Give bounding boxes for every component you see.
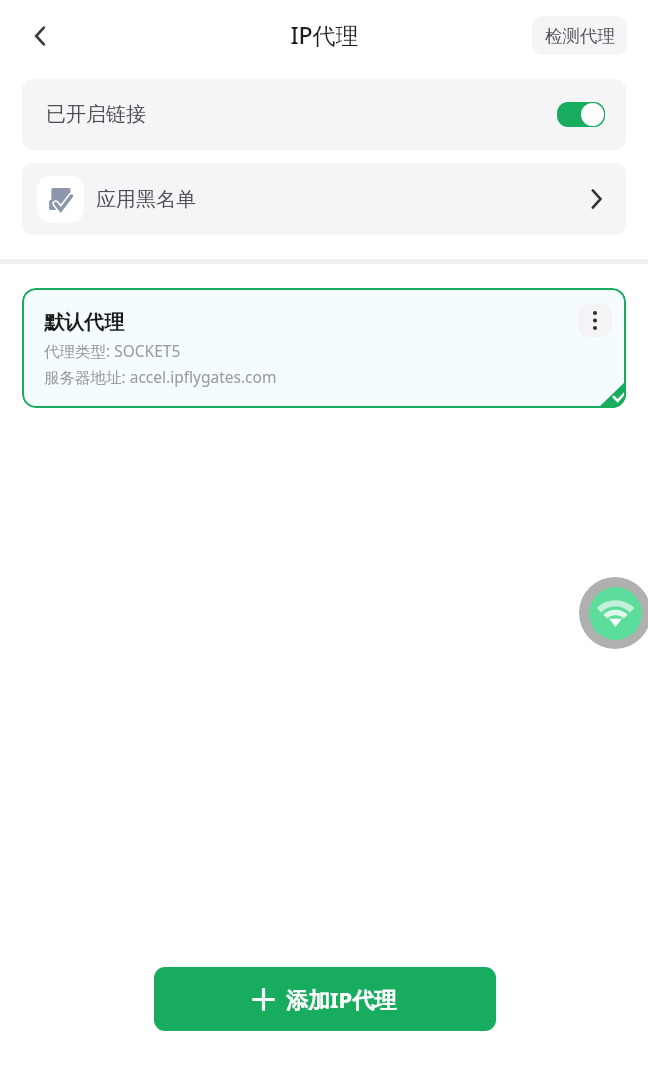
staticText: 默认代理 xyxy=(44,310,124,335)
button[interactable]: Back xyxy=(18,14,62,58)
staticText: 服务器地址: accel.ipflygates.com xyxy=(44,366,277,387)
button[interactable]: 添加IP代理 xyxy=(154,967,496,1031)
button[interactable]: Connection status xyxy=(579,577,648,649)
button[interactable]: More options xyxy=(578,304,612,337)
staticText: 已开启链接 xyxy=(46,102,146,127)
staticText: 添加IP代理 xyxy=(286,984,397,1014)
button[interactable]: 已开启链接 xyxy=(22,79,626,150)
staticText: 代理类型: SOCKET5 xyxy=(44,340,181,361)
staticText: 检测代理 xyxy=(545,25,615,47)
button[interactable]: Connection toggle xyxy=(557,102,605,127)
button[interactable]: 应用黑名单 xyxy=(22,163,626,235)
button[interactable]: 检测代理 xyxy=(532,16,627,55)
staticText: 应用黑名单 xyxy=(96,187,196,212)
button[interactable]: 默认代理 xyxy=(22,288,626,408)
staticText: IP代理 xyxy=(290,19,359,50)
